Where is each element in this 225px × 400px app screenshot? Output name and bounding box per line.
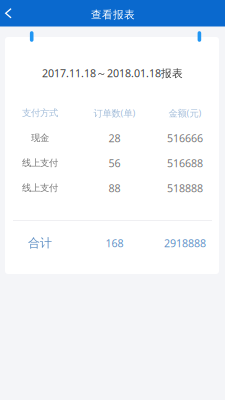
staticText: 查看报表 (91, 8, 135, 21)
staticText: 516688 (167, 156, 203, 170)
button[interactable]: Back (0, 0, 16, 26)
staticText: 线上支付 (22, 182, 58, 194)
staticText: 168 (105, 236, 123, 250)
staticText: 2017.11.18～2018.01.18报表 (42, 66, 183, 80)
staticText: 支付方式 (22, 107, 58, 119)
staticText: 2918888 (164, 236, 206, 250)
staticText: 合计 (28, 236, 52, 250)
staticText: 线上支付 (22, 157, 58, 169)
staticText: 56 (108, 156, 120, 170)
staticText: 现金 (31, 132, 49, 144)
staticText: 518888 (167, 181, 203, 195)
staticText: 28 (108, 131, 120, 145)
staticText: 金额(元) (168, 107, 201, 119)
staticText: 88 (108, 181, 120, 195)
staticText: 订单数(单) (93, 107, 135, 119)
staticText: 516666 (167, 131, 203, 145)
